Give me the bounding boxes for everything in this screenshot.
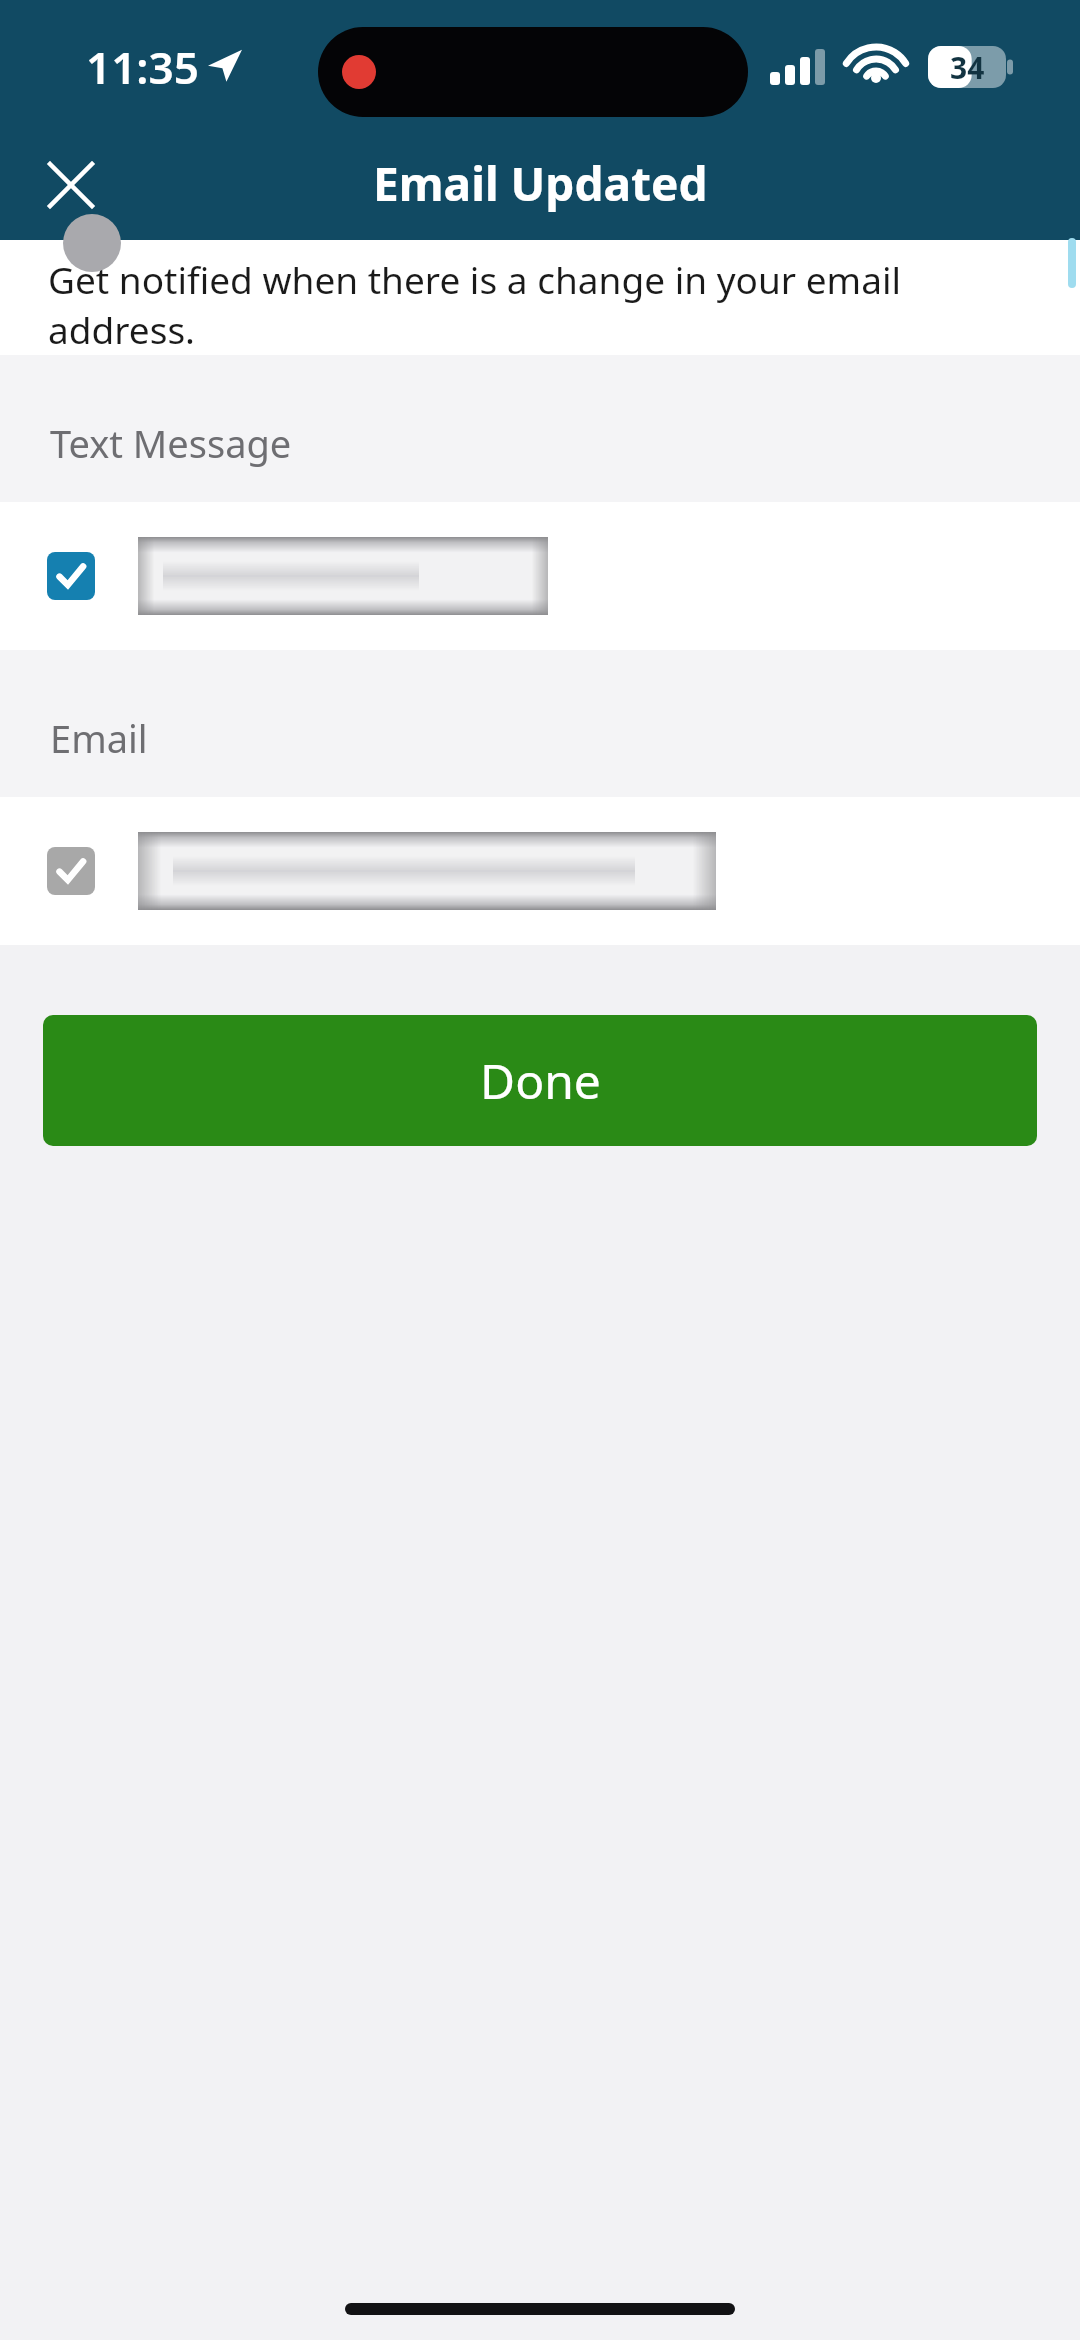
- staticText: Get notified when there is a change in y…: [48, 254, 1044, 354]
- staticText: Email Updated: [373, 152, 708, 215]
- staticText: 11:35: [86, 37, 199, 97]
- staticText: Done: [480, 1048, 601, 1113]
- button[interactable]: [0, 502, 1080, 650]
- staticText: Email: [50, 712, 148, 764]
- button[interactable]: Close: [28, 142, 114, 228]
- staticText: 34: [950, 47, 985, 88]
- staticText: Text Message: [50, 417, 292, 469]
- button[interactable]: [0, 797, 1080, 945]
- button[interactable]: Done: [43, 1015, 1037, 1146]
